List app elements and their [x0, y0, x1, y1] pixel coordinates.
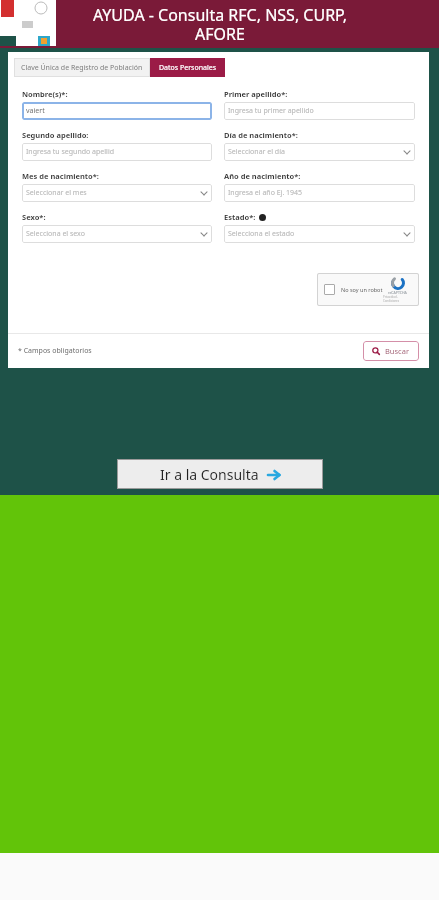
staticText: Ingresa tu primer apellido [228, 106, 314, 116]
staticText: Clave Única de Registro de Población [21, 63, 143, 73]
button[interactable]: Ir a la Consulta [117, 459, 323, 489]
staticText: * Campos obligatorios [18, 346, 92, 356]
button[interactable]: No soy un robot [317, 273, 419, 306]
button[interactable]: Buscar [363, 341, 419, 361]
staticText: Mes de nacimiento*: [22, 171, 99, 181]
staticText: Estado*: [224, 212, 256, 222]
button[interactable]: Selecciona el sexo [22, 225, 212, 243]
staticText: Ingresa tu segundo apellid [26, 147, 114, 157]
staticText: Día de nacimiento*: [224, 130, 298, 140]
staticText: Seleccionar el mes [26, 188, 87, 198]
button[interactable]: vaiert [22, 102, 212, 120]
button[interactable]: Datos Personales [150, 58, 225, 77]
staticText: Ir a la Consulta [160, 465, 259, 484]
button[interactable]: Selecciona el estado [224, 225, 415, 243]
button[interactable]: Clave Única de Registro de Población [14, 58, 150, 77]
staticText: Primer apellido*: [224, 89, 288, 99]
staticText: Privacidad - Condiciones [383, 295, 412, 303]
staticText: reCAPTCHA [388, 290, 407, 295]
button[interactable]: Ingresa el año Ej. 1945 [224, 184, 415, 202]
staticText: Seleccionar el día [228, 147, 285, 157]
button[interactable]: Ingresa tu segundo apellid [22, 143, 212, 161]
staticText: Datos Personales [159, 63, 216, 73]
staticText: Selecciona el sexo [26, 229, 85, 239]
staticText: Buscar [385, 346, 410, 356]
staticText: Año de nacimiento*: [224, 171, 301, 181]
button[interactable]: Ingresa tu primer apellido [224, 102, 415, 120]
staticText: No soy un robot [341, 286, 383, 293]
staticText: Sexo*: [22, 212, 46, 222]
staticText: Segundo apellido: [22, 130, 89, 140]
staticText: Nombre(s)*: [22, 89, 68, 99]
staticText: Ingresa el año Ej. 1945 [228, 188, 303, 198]
staticText: vaiert [26, 106, 45, 116]
staticText: Selecciona el estado [228, 229, 295, 239]
button[interactable]: Seleccionar el día [224, 143, 415, 161]
button[interactable]: Vista previa [0, 0, 56, 46]
staticText: AYUDA - Consulta RFC, NSS, CURP, AFORE [93, 4, 347, 45]
button[interactable]: Seleccionar el mes [22, 184, 212, 202]
